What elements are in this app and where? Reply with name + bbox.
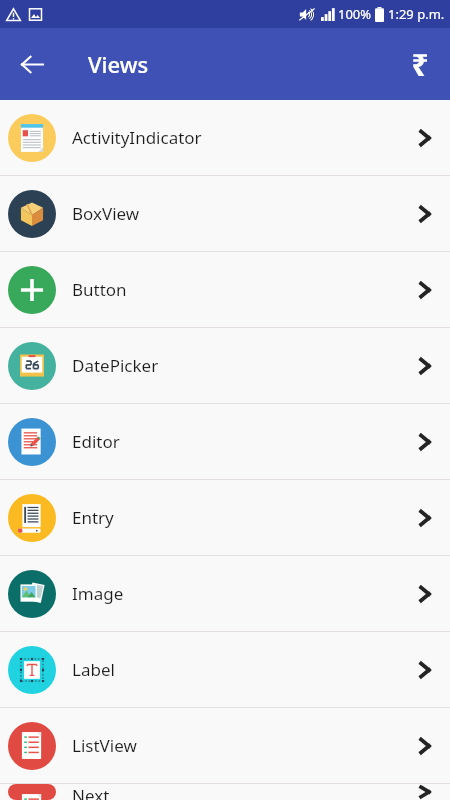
staticText: Image (72, 582, 414, 605)
staticText: Entry (72, 506, 414, 529)
button[interactable]: Editor (0, 404, 450, 479)
button[interactable]: Back (8, 40, 56, 88)
button[interactable]: ActivityIndicator (0, 100, 450, 175)
button[interactable]: Button (0, 252, 450, 327)
staticText: 1:29 p.m. (388, 5, 445, 23)
button[interactable]: Rupee (396, 40, 444, 88)
button[interactable]: Entry (0, 480, 450, 555)
staticText: Button (72, 278, 414, 301)
button[interactable]: Next (0, 784, 450, 800)
staticText: Label (72, 658, 414, 681)
staticText: ₹ (411, 44, 429, 85)
staticText: 100% (338, 5, 372, 23)
staticText: BoxView (72, 202, 414, 225)
staticText: DatePicker (72, 354, 414, 377)
staticText: Next (72, 784, 414, 800)
button[interactable]: ListView (0, 708, 450, 783)
staticText: Editor (72, 430, 414, 453)
staticText: ListView (72, 734, 414, 757)
button[interactable]: Label (0, 632, 450, 707)
staticText: Views (88, 49, 149, 79)
staticText: ActivityIndicator (72, 126, 414, 149)
button[interactable]: DatePicker (0, 328, 450, 403)
button[interactable]: Image (0, 556, 450, 631)
button[interactable]: BoxView (0, 176, 450, 251)
